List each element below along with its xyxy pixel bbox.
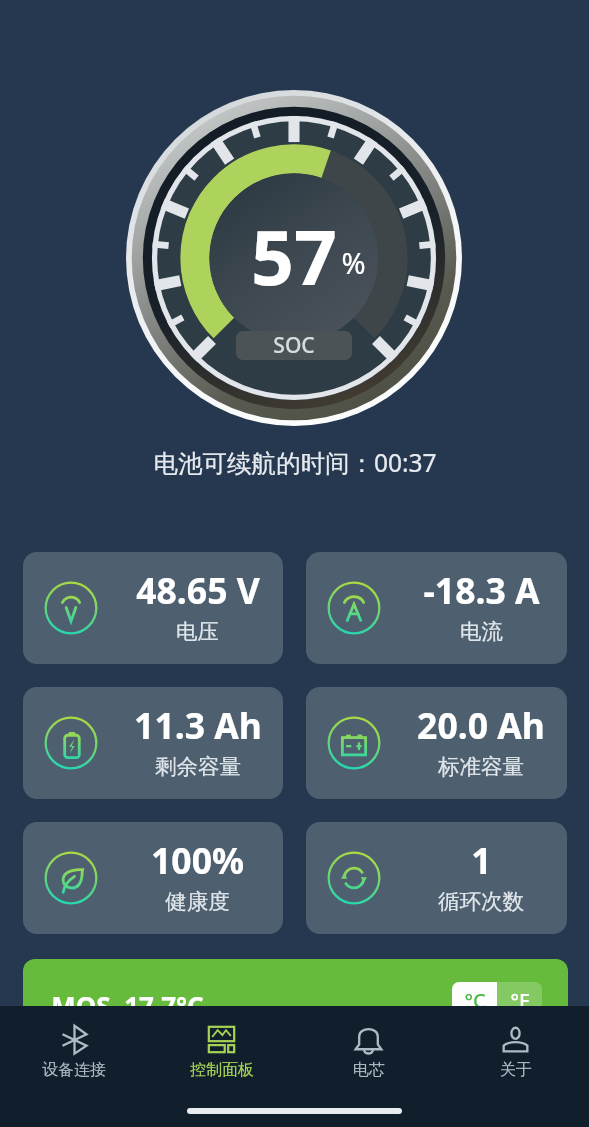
button[interactable]: MOS 17.7°C [23, 959, 568, 1049]
staticText: 20.0 Ah [417, 701, 545, 749]
staticText: 设备连接 [42, 1060, 106, 1080]
staticText: 标准容量 [438, 753, 524, 780]
button[interactable]: 48.65 V [23, 552, 283, 664]
staticText: 48.65 V [136, 566, 260, 614]
button[interactable]: 100% [23, 822, 283, 934]
button[interactable]: 11.3 Ah [23, 687, 283, 799]
button[interactable]: 控制面板 [148, 1024, 295, 1086]
staticText: 电流 [460, 618, 503, 645]
staticText: 关于 [500, 1060, 532, 1080]
staticText: 电芯 [353, 1060, 385, 1080]
staticText: % [341, 243, 366, 282]
staticText: 57 [251, 205, 337, 307]
staticText: 循环次数 [438, 888, 524, 915]
staticText: °C [464, 987, 486, 1014]
button[interactable]: °C [452, 982, 542, 1018]
button[interactable]: 设备连接 [0, 1024, 148, 1086]
staticText: 控制面板 [190, 1060, 254, 1080]
staticText: 电池可续航的时间：00:37 [153, 446, 437, 479]
staticText: 电压 [176, 618, 219, 645]
button[interactable]: 1 [306, 822, 567, 934]
staticText: 健康度 [165, 888, 230, 915]
staticText: 1 [471, 836, 492, 884]
staticText: MOS 17.7°C [51, 988, 204, 1023]
button[interactable]: 关于 [442, 1024, 589, 1086]
button[interactable]: 20.0 Ah [306, 687, 567, 799]
button[interactable]: -18.3 A [306, 552, 567, 664]
staticText: -18.3 A [423, 566, 540, 614]
staticText: 11.3 Ah [134, 701, 262, 749]
staticText: SOC [273, 331, 315, 360]
button[interactable]: SOC [236, 331, 352, 360]
staticText: 剩余容量 [155, 753, 241, 780]
button[interactable]: 电芯 [295, 1024, 442, 1086]
staticText: 100% [151, 836, 244, 884]
staticText: °F [510, 987, 530, 1014]
